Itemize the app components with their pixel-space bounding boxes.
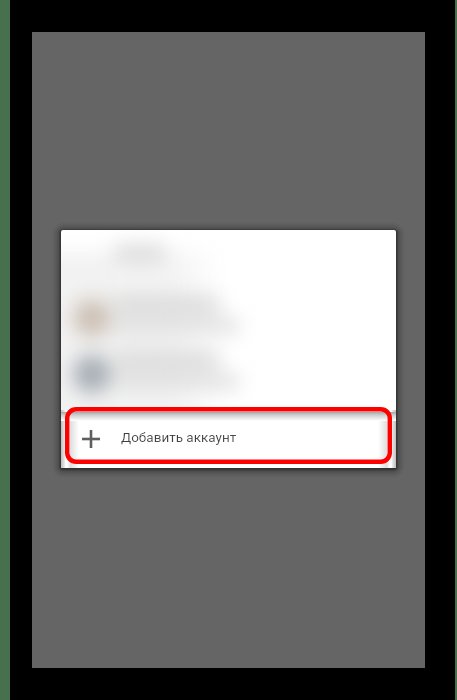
staticText: Добавить аккаунт — [121, 429, 237, 445]
button[interactable]: Add account — [61, 410, 396, 468]
other: Add account — [82, 430, 100, 448]
